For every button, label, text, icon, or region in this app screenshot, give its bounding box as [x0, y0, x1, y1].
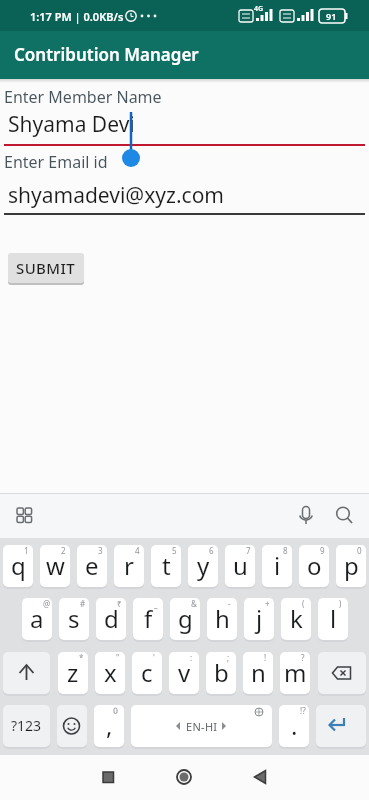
staticText: ; — [227, 652, 230, 663]
staticText: _ — [154, 598, 158, 609]
staticText: # — [80, 598, 86, 609]
staticText: p — [344, 549, 359, 582]
staticText: shyamadevi@xyz.com — [8, 181, 224, 210]
staticText: e — [85, 549, 99, 582]
staticText: !? — [300, 705, 306, 716]
staticText: : — [190, 652, 193, 663]
staticText: k — [290, 602, 303, 635]
staticText: ! — [264, 652, 267, 663]
staticText: Contribution Manager — [14, 43, 199, 66]
staticText: & — [191, 598, 197, 609]
staticText: y — [197, 549, 210, 582]
staticText: 1:17 PM | 0.0KB/s — [30, 9, 124, 24]
staticText: a — [30, 602, 44, 635]
staticText: 1 — [24, 545, 29, 556]
staticText: ( — [302, 598, 305, 609]
staticText: x — [104, 656, 117, 689]
staticText: 0 — [357, 545, 362, 556]
staticText: d — [104, 602, 119, 635]
staticText: ? — [301, 652, 305, 663]
staticText: SUBMIT — [16, 258, 76, 278]
staticText: 5 — [172, 545, 177, 556]
staticText: b — [214, 656, 229, 689]
staticText: ?123 — [11, 716, 42, 735]
staticText: n — [251, 656, 266, 689]
staticText: 91 — [326, 10, 337, 22]
staticText: w — [46, 549, 65, 582]
staticText: 6 — [209, 545, 214, 556]
staticText: g — [178, 602, 193, 635]
staticText: + — [265, 598, 270, 609]
staticText: h — [215, 602, 230, 635]
staticText: 7 — [246, 545, 251, 556]
staticText: u — [233, 549, 248, 582]
staticText: m — [284, 656, 307, 689]
staticText: Shyama Devi — [8, 110, 135, 139]
staticText: @ — [43, 598, 51, 609]
staticText: ) — [339, 598, 342, 609]
staticText: * — [79, 652, 84, 663]
staticText: v — [178, 656, 191, 689]
staticText: ₹ — [117, 598, 122, 609]
staticText: , — [106, 709, 113, 742]
staticText: t — [162, 549, 171, 582]
staticText: " — [116, 652, 120, 663]
staticText: f — [144, 602, 153, 635]
staticText: 2 — [61, 545, 66, 556]
staticText: q — [11, 549, 26, 582]
staticText: 4 — [135, 545, 140, 556]
staticText: 9 — [320, 545, 325, 556]
staticText: z — [67, 656, 79, 689]
staticText: . — [291, 709, 298, 742]
staticText: ' — [153, 652, 155, 663]
staticText: l — [330, 602, 337, 635]
staticText: o — [307, 549, 322, 582]
staticText: EN-HI — [186, 719, 218, 734]
staticText: c — [141, 656, 153, 689]
staticText: Enter Member Name — [4, 86, 162, 108]
staticText: 4G — [254, 4, 264, 14]
staticText: 8 — [283, 545, 288, 556]
staticText: 3 — [98, 545, 103, 556]
staticText: - — [228, 598, 231, 609]
staticText: s — [68, 602, 80, 635]
staticText: i — [274, 549, 281, 582]
staticText: j — [256, 602, 263, 635]
staticText: Enter Email id — [4, 151, 108, 173]
staticText: r — [124, 549, 134, 582]
